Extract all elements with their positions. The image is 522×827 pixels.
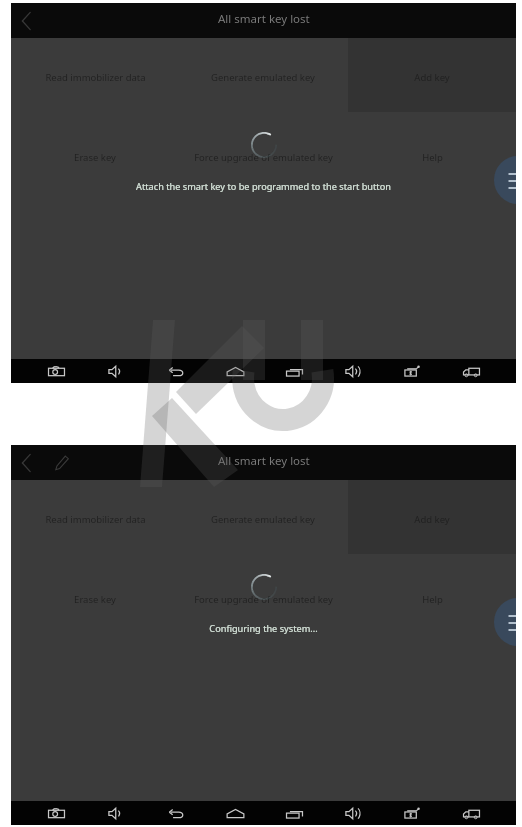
- button[interactable]: Bluetooth device: [383, 801, 442, 825]
- button[interactable]: Back: [11, 3, 43, 38]
- staticText: Help: [422, 151, 443, 164]
- button[interactable]: Menu: [494, 598, 516, 646]
- button[interactable]: Screenshot: [26, 801, 86, 825]
- button[interactable]: Volume down: [86, 359, 146, 383]
- button[interactable]: Home: [206, 359, 265, 383]
- button[interactable]: Force upgrade of emulated key: [179, 137, 347, 177]
- button[interactable]: Vehicle: [442, 359, 501, 383]
- button[interactable]: Back: [146, 801, 206, 825]
- staticText: Read immobilizer data: [45, 71, 146, 84]
- staticText: Generate emulated key: [211, 71, 315, 84]
- button[interactable]: Generate emulated key: [179, 499, 347, 539]
- button[interactable]: Back: [11, 445, 43, 480]
- button[interactable]: Screenshot: [26, 359, 86, 383]
- staticText: All smart key lost: [218, 11, 310, 27]
- staticText: Generate emulated key: [211, 513, 315, 526]
- button[interactable]: Menu: [494, 156, 516, 204]
- button[interactable]: Help: [348, 137, 516, 177]
- button[interactable]: Recent apps: [265, 359, 324, 383]
- button[interactable]: Back: [146, 359, 206, 383]
- button[interactable]: Volume down: [86, 801, 146, 825]
- staticText: Read immobilizer data: [45, 513, 146, 526]
- button[interactable]: Generate emulated key: [179, 57, 347, 97]
- button[interactable]: Bluetooth device: [383, 359, 442, 383]
- staticText: Force upgrade of emulated key: [194, 593, 333, 606]
- button[interactable]: Volume up: [324, 359, 383, 383]
- button[interactable]: Force upgrade of emulated key: [179, 579, 347, 619]
- staticText: Erase key: [74, 593, 116, 606]
- button[interactable]: Read immobilizer data: [11, 499, 179, 539]
- staticText: Help: [422, 593, 443, 606]
- button[interactable]: Edit: [45, 445, 77, 480]
- staticText: All smart key lost: [218, 453, 310, 469]
- button[interactable]: Recent apps: [265, 801, 324, 825]
- staticText: Erase key: [74, 151, 116, 164]
- button[interactable]: Help: [348, 579, 516, 619]
- staticText: Force upgrade of emulated key: [194, 151, 333, 164]
- button[interactable]: Home: [206, 801, 265, 825]
- button[interactable]: Read immobilizer data: [11, 57, 179, 97]
- staticText: Attach the smart key to be programmed to…: [136, 180, 391, 193]
- staticText: Configuring the system...: [209, 622, 318, 635]
- staticText: Add key: [414, 513, 450, 526]
- staticText: Add key: [414, 71, 450, 84]
- button[interactable]: Vehicle: [442, 801, 501, 825]
- button[interactable]: Volume up: [324, 801, 383, 825]
